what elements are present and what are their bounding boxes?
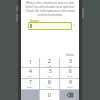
button[interactable]: Answer	[28, 19, 72, 30]
button[interactable]: Next field	[72, 23, 76, 27]
staticText: PQRS	[27, 86, 33, 89]
button[interactable]: 0	[40, 90, 59, 100]
button[interactable]: 7	[21, 79, 39, 89]
staticText: 4	[29, 68, 32, 75]
staticText: GHI	[28, 75, 32, 78]
staticText: 9	[69, 79, 72, 86]
button[interactable]: 2	[40, 58, 59, 67]
button[interactable]: 3	[60, 58, 79, 67]
staticText: 5	[49, 68, 52, 75]
staticText: 2	[48, 58, 51, 65]
staticText: 0	[48, 92, 51, 99]
button[interactable]: 6	[60, 68, 79, 78]
button[interactable]: 8	[40, 79, 59, 89]
staticText: ABC	[47, 65, 52, 67]
staticText: 3	[69, 58, 72, 65]
button[interactable]: Previous field	[24, 23, 28, 27]
staticText: Done	[66, 53, 75, 57]
button[interactable]: 4	[21, 68, 39, 78]
staticText: What is the maximum cost on this loan? L…	[24, 1, 76, 17]
staticText: JKL	[48, 75, 52, 78]
button[interactable]: 9	[60, 79, 79, 89]
staticText: DEF	[68, 65, 72, 67]
button[interactable]: Backspace	[60, 90, 79, 100]
staticText: 6	[69, 68, 72, 75]
staticText: TUV	[47, 86, 52, 89]
button[interactable]: Done	[65, 53, 76, 57]
staticText: MNO	[67, 75, 73, 78]
staticText: 8	[48, 79, 51, 86]
staticText: WXYZ	[67, 86, 73, 89]
staticText: 1	[29, 59, 32, 66]
staticText: Answer	[30, 19, 40, 23]
staticText: 7	[29, 79, 32, 86]
button[interactable]: 5	[40, 68, 59, 78]
button[interactable]: 1	[21, 58, 39, 67]
